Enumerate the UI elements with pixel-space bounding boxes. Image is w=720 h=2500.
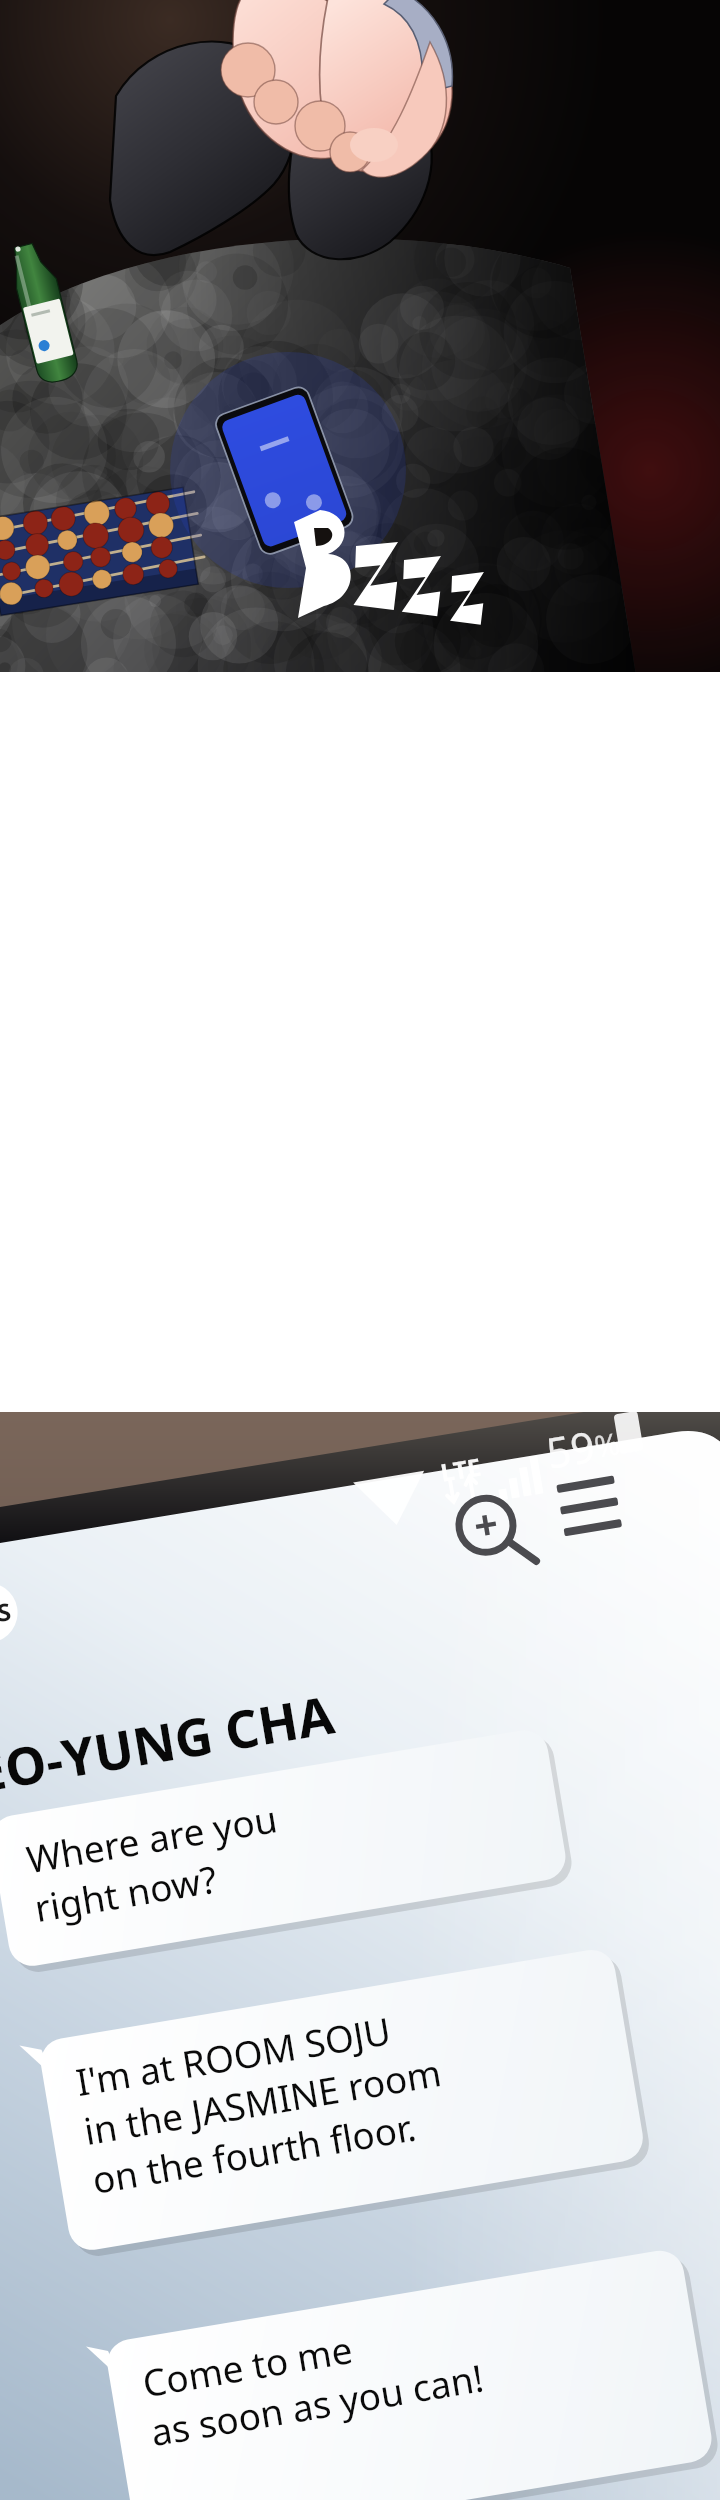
button[interactable]: Where are you right now? xyxy=(8,1728,592,1920)
button[interactable]: SNS xyxy=(8,1508,100,1600)
button[interactable]: I'm at ROOM SOJU in the JASMINE room on … xyxy=(22,1958,620,2208)
button[interactable]: Search xyxy=(512,1498,604,1590)
button[interactable]: Come to me as soon as you can! xyxy=(36,2264,636,2500)
button[interactable]: Menu xyxy=(606,1492,700,1580)
